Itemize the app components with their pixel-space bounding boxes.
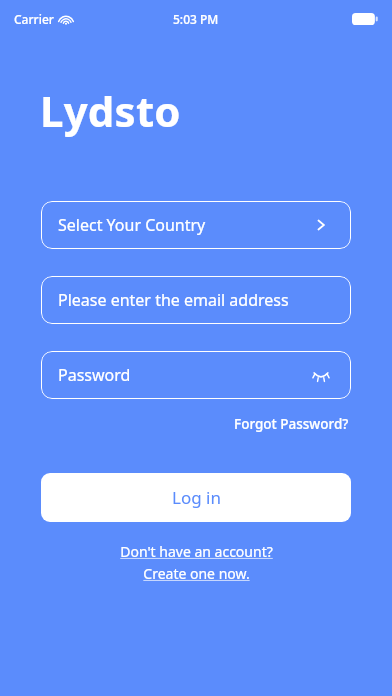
button[interactable]: Log in [41,473,351,522]
button[interactable]: Please enter the email address [41,276,351,324]
staticText: Create one now. [143,564,250,583]
staticText: Log in [172,486,221,509]
staticText: Please enter the email address [58,289,289,311]
staticText: Password [58,364,131,386]
other: Select your country [308,212,334,238]
staticText: Don't have an account? [120,542,273,561]
staticText: Forgot Password? [234,415,349,433]
staticText: Carrier [14,11,54,27]
button[interactable]: Don't have an account? [41,540,351,585]
staticText: Lydsto [40,82,181,139]
staticText: 5:03 PM [173,11,219,27]
button[interactable]: Password [41,351,351,399]
staticText: Select Your Country [58,214,206,236]
other: Show password [308,362,334,388]
button[interactable]: Select Your Country [41,201,351,249]
button[interactable]: Forgot Password? [232,413,351,435]
